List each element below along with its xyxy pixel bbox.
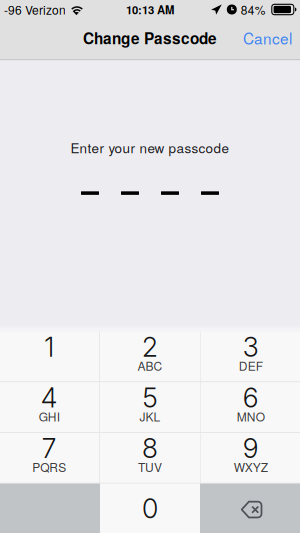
staticText: JKL bbox=[139, 408, 160, 425]
button[interactable]: 5 bbox=[100, 382, 200, 432]
staticText: 84% bbox=[241, 1, 266, 18]
staticText: ABC bbox=[137, 357, 162, 374]
staticText: 6 bbox=[243, 382, 259, 414]
staticText: GHI bbox=[39, 408, 60, 425]
button[interactable]: 0 bbox=[100, 484, 200, 533]
staticText: -96 Verizon bbox=[4, 1, 66, 18]
button[interactable]: Cancel bbox=[235, 19, 300, 56]
staticText: 9 bbox=[243, 432, 259, 465]
staticText: Enter your new passcode bbox=[70, 138, 229, 157]
button[interactable]: 4 bbox=[0, 382, 99, 432]
button[interactable]: 2 bbox=[100, 331, 200, 381]
button[interactable]: 6 bbox=[201, 382, 300, 432]
staticText: Change Passcode bbox=[83, 27, 217, 49]
button[interactable]: 8 bbox=[100, 433, 200, 483]
button[interactable]: Delete bbox=[200, 484, 300, 533]
staticText: MNO bbox=[237, 408, 265, 425]
button[interactable]: 9 bbox=[201, 433, 300, 483]
button[interactable]: 7 bbox=[0, 433, 99, 483]
button[interactable]: 3 bbox=[201, 331, 300, 381]
staticText: WXYZ bbox=[234, 458, 268, 475]
staticText: 5 bbox=[142, 382, 157, 414]
staticText: 10:13 AM bbox=[126, 1, 174, 18]
staticText: 4 bbox=[41, 382, 58, 414]
staticText: DEF bbox=[239, 357, 263, 374]
staticText: Cancel bbox=[243, 27, 292, 49]
staticText: 0 bbox=[142, 492, 158, 525]
staticText: 7 bbox=[42, 432, 57, 465]
staticText: 3 bbox=[243, 331, 259, 363]
staticText: 1 bbox=[44, 331, 54, 363]
staticText: TUV bbox=[138, 458, 162, 475]
staticText: 2 bbox=[142, 331, 158, 363]
staticText: PQRS bbox=[32, 458, 66, 475]
staticText: 8 bbox=[142, 432, 158, 465]
button[interactable]: 1 bbox=[0, 331, 99, 381]
